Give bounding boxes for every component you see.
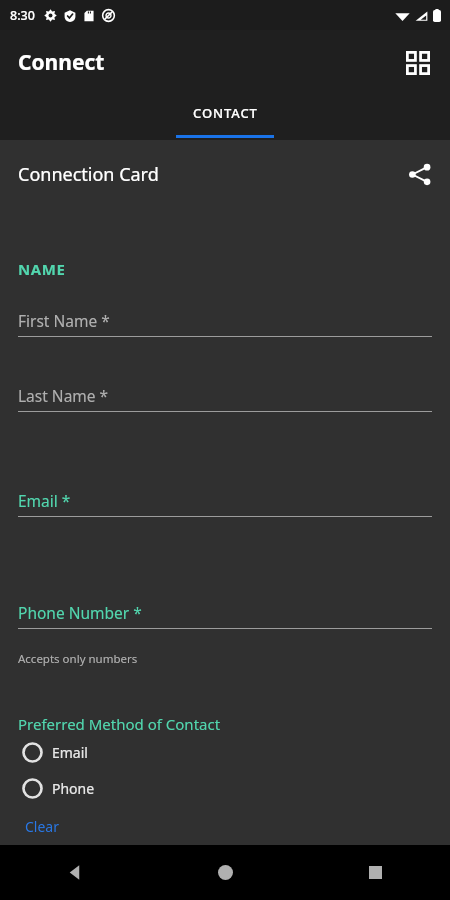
button[interactable]: CONTACT xyxy=(176,95,274,140)
staticText: Last Name * xyxy=(18,385,109,406)
button[interactable]: Email xyxy=(22,740,98,765)
staticText: Accepts only numbers xyxy=(18,651,138,667)
button[interactable]: Phone Number * xyxy=(18,602,432,629)
staticText: Phone Number * xyxy=(18,602,142,623)
button[interactable]: Home xyxy=(150,845,300,900)
button[interactable]: Share xyxy=(398,153,440,195)
staticText: First Name * xyxy=(18,310,110,331)
button[interactable]: Phone xyxy=(22,776,105,801)
button[interactable]: Clear xyxy=(22,815,62,838)
button[interactable]: Recent apps xyxy=(300,845,450,900)
staticText: CONTACT xyxy=(193,104,258,122)
button[interactable]: First Name * xyxy=(18,310,432,337)
staticText: Phone xyxy=(52,779,95,798)
staticText: Email * xyxy=(18,490,71,511)
staticText: NAME xyxy=(18,259,66,279)
button[interactable]: Email * xyxy=(18,490,432,517)
button[interactable]: Back xyxy=(0,845,150,900)
staticText: 8:30 xyxy=(10,7,35,24)
button[interactable]: Last Name * xyxy=(18,385,432,412)
staticText: Preferred Method of Contact xyxy=(18,714,221,734)
staticText: Email xyxy=(52,743,88,762)
staticText: Connection Card xyxy=(18,162,159,187)
staticText: Connect xyxy=(18,48,105,77)
button[interactable]: Dashboard xyxy=(396,41,440,85)
staticText: Clear xyxy=(25,817,59,836)
